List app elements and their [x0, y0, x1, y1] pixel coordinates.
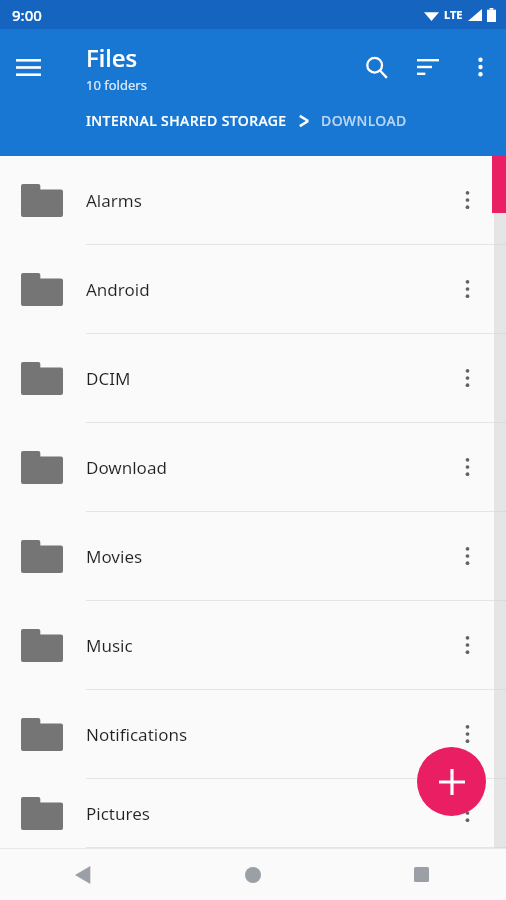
staticText: INTERNAL SHARED STORAGE	[86, 111, 287, 130]
button[interactable]: More options for Pictures	[443, 789, 491, 837]
button[interactable]: More options for DCIM	[443, 354, 491, 402]
staticText: DCIM	[86, 367, 131, 390]
staticText: Android	[86, 278, 150, 301]
staticText: Music	[86, 634, 133, 657]
staticText: 10 folders	[86, 76, 147, 94]
staticText: Alarms	[86, 189, 142, 212]
button[interactable]: Recent apps	[337, 849, 506, 900]
staticText: Notifications	[86, 723, 188, 746]
button[interactable]: Android	[0, 245, 506, 334]
button[interactable]: Notifications	[0, 690, 506, 779]
button[interactable]: More options for Music	[443, 621, 491, 669]
button[interactable]: DCIM	[0, 334, 506, 423]
button[interactable]: More options for Android	[443, 265, 491, 313]
button[interactable]: Movies	[0, 512, 506, 601]
button[interactable]: More options for Notifications	[443, 710, 491, 758]
staticText: 9:00	[12, 5, 42, 25]
staticText: LTE	[444, 7, 463, 22]
staticText: Pictures	[86, 802, 150, 825]
button[interactable]: Open navigation drawer	[0, 39, 56, 95]
staticText: Download	[86, 456, 167, 479]
button[interactable]: Download	[0, 423, 506, 512]
button[interactable]: INTERNAL SHARED STORAGE	[86, 105, 287, 136]
button[interactable]: Pictures	[0, 779, 506, 848]
button[interactable]: Music	[0, 601, 506, 690]
button[interactable]: More options for Download	[443, 443, 491, 491]
staticText: DOWNLOAD	[321, 111, 407, 130]
button[interactable]: Search	[350, 41, 402, 93]
button[interactable]: Back	[0, 849, 168, 900]
staticText: Movies	[86, 545, 143, 568]
button[interactable]: Home	[168, 849, 337, 900]
button[interactable]: DOWNLOAD	[321, 105, 407, 136]
button[interactable]: More options for Alarms	[443, 176, 491, 224]
button[interactable]: Sort	[402, 41, 454, 93]
button[interactable]: Alarms	[0, 156, 506, 245]
button[interactable]: More options	[454, 41, 506, 93]
button[interactable]: More options for Movies	[443, 532, 491, 580]
staticText: Files	[86, 41, 138, 74]
button[interactable]: Create new	[417, 747, 486, 816]
